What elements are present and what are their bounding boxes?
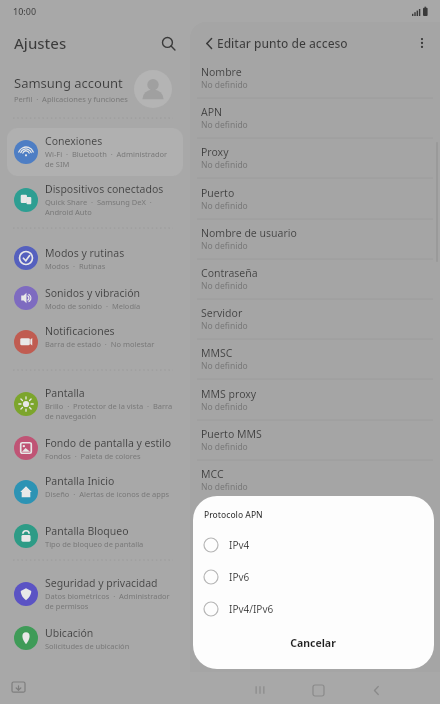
staticText: Notificaciones <box>45 324 115 338</box>
staticText: IPv4 <box>229 538 250 552</box>
button[interactable]: MCC <box>190 460 440 500</box>
staticText: Nombre de usuario <box>201 226 297 240</box>
button[interactable]: Sonidos y vibración <box>7 278 183 318</box>
button[interactable]: Fondo de pantalla y estilo <box>7 428 183 468</box>
staticText: APN <box>201 105 223 119</box>
staticText: MMS proxy <box>201 387 257 401</box>
button[interactable]: Proxy <box>190 138 440 178</box>
button[interactable]: Atrás <box>195 29 223 57</box>
staticText: Pantalla Bloqueo <box>45 524 129 538</box>
button[interactable]: Samsung account <box>0 66 190 112</box>
button[interactable]: Pantalla <box>7 380 183 428</box>
button[interactable]: Pantalla Inicio <box>7 468 183 516</box>
staticText: Barra de estado · No molestar <box>45 339 155 349</box>
button[interactable]: Dispositivos conectados <box>7 176 183 224</box>
button[interactable]: Inicio <box>306 678 330 702</box>
staticText: Editar punto de acceso <box>217 35 348 51</box>
staticText: Fondos · Paleta de colores <box>45 451 141 461</box>
staticText: 10:00 <box>13 5 37 17</box>
staticText: Quick Share · Samsung DeX · Android Auto <box>45 197 177 217</box>
staticText: Contraseña <box>201 266 258 280</box>
button[interactable]: Atrás <box>364 678 388 702</box>
staticText: Ubicación <box>45 626 94 640</box>
staticText: Pantalla <box>45 386 85 400</box>
staticText: Modos · Rutinas <box>45 261 106 271</box>
button[interactable]: Más opciones <box>408 29 436 57</box>
staticText: Brillo · Protector de la vista · Barra d… <box>45 401 177 421</box>
button[interactable]: IPv6 <box>193 562 434 592</box>
button[interactable]: IPv4 <box>193 530 434 560</box>
button[interactable]: Pantalla Bloqueo <box>7 516 183 556</box>
button[interactable]: APN <box>190 98 440 138</box>
staticText: No definido <box>201 79 248 91</box>
staticText: Tipo de bloqueo de pantalla <box>45 539 144 549</box>
staticText: No definido <box>201 401 248 413</box>
staticText: MCC <box>201 467 224 481</box>
button[interactable]: MMSC <box>190 339 440 379</box>
staticText: Modo de sonido · Melodía <box>45 301 141 311</box>
staticText: Puerto MMS <box>201 427 262 441</box>
button[interactable]: Seguridad y privacidad <box>7 570 183 618</box>
button[interactable]: Puerto <box>190 179 440 219</box>
staticText: Perfil · Aplicaciones y funciones <box>14 94 128 104</box>
staticText: Protocolo APN <box>204 509 263 521</box>
staticText: Pantalla Inicio <box>45 474 115 488</box>
staticText: Datos biométricos · Administrador de per… <box>45 591 177 611</box>
staticText: Dispositivos conectados <box>45 182 164 196</box>
staticText: IPv4/IPv6 <box>229 602 274 616</box>
button[interactable]: Ubicación <box>7 618 183 658</box>
staticText: IPv6 <box>229 570 250 584</box>
button[interactable]: Contraseña <box>190 259 440 299</box>
button[interactable]: Ajustes <box>14 33 67 53</box>
staticText: Diseño · Alertas de iconos de apps <box>45 489 170 499</box>
button[interactable]: Modos y rutinas <box>7 238 183 278</box>
staticText: No definido <box>201 119 248 131</box>
staticText: Modos y rutinas <box>45 246 125 260</box>
button[interactable]: Puerto MMS <box>190 420 440 460</box>
staticText: Proxy <box>201 145 229 159</box>
button[interactable]: Captura <box>8 678 28 698</box>
staticText: No definido <box>201 200 248 212</box>
staticText: Wi-Fi · Bluetooth · Administrador de SIM <box>45 149 177 169</box>
button[interactable]: Recientes <box>248 678 272 702</box>
staticText: Servidor <box>201 306 243 320</box>
staticText: Sonidos y vibración <box>45 286 141 300</box>
staticText: Puerto <box>201 186 235 200</box>
staticText: No definido <box>201 481 248 493</box>
staticText: No definido <box>201 240 248 252</box>
staticText: Cancelar <box>290 636 336 650</box>
button[interactable]: Nombre <box>190 58 440 98</box>
staticText: Fondo de pantalla y estilo <box>45 436 172 450</box>
staticText: No definido <box>201 441 248 453</box>
button[interactable]: Servidor <box>190 299 440 339</box>
button[interactable]: Conexiones <box>7 128 183 176</box>
button[interactable]: MMS proxy <box>190 380 440 420</box>
button[interactable]: IPv4/IPv6 <box>193 594 434 624</box>
staticText: Conexiones <box>45 134 103 148</box>
staticText: Seguridad y privacidad <box>45 576 158 590</box>
button[interactable]: Nombre de usuario <box>190 219 440 259</box>
staticText: MMSC <box>201 346 233 360</box>
staticText: No definido <box>201 280 248 292</box>
staticText: No definido <box>201 360 248 372</box>
button[interactable]: Notificaciones <box>7 318 183 366</box>
staticText: Solicitudes de ubicación <box>45 641 130 651</box>
staticText: No definido <box>201 159 248 171</box>
button[interactable]: Buscar <box>155 30 181 56</box>
staticText: Nombre <box>201 65 242 79</box>
staticText: Samsung account <box>14 74 123 92</box>
staticText: No definido <box>201 320 248 332</box>
button[interactable]: Cancelar <box>263 629 363 657</box>
